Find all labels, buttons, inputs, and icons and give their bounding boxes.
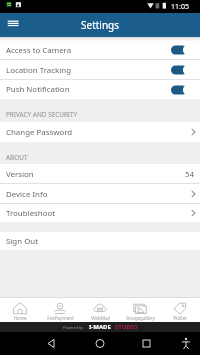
staticText: Version [6,169,34,180]
staticText: Change Password [6,127,73,138]
button[interactable]: System navigation [0,332,200,355]
staticText: 11:05 [171,2,189,12]
staticText: Sign Out [6,236,39,247]
staticText: PRIVACY AND SECURITY [6,110,78,119]
staticText: Wallet [173,315,187,321]
button[interactable]: Sign Out [0,232,200,250]
button[interactable]: Imagegallery [120,298,160,322]
staticText: 54 [185,169,195,180]
button[interactable]: Wallet [160,298,200,322]
staticText: Home [13,315,27,321]
button[interactable]: Toggle [171,43,188,57]
button[interactable]: Device Info [0,184,200,204]
staticText: Imagegallery [126,315,155,321]
staticText: Settings [81,18,120,32]
staticText: Push Notification [6,84,70,95]
button[interactable]: Change Password [0,122,200,142]
button[interactable]: Troubleshoot [0,204,200,222]
button[interactable]: Access to Camera [0,40,200,60]
staticText: Access to Camera [6,45,72,56]
button[interactable]: Toggle [171,63,188,77]
staticText: Troubleshoot [6,208,56,219]
button[interactable]: Version [0,164,200,184]
staticText: WebMail [91,315,110,321]
button[interactable]: Location Tracking [0,60,200,80]
staticText: Device Info [6,189,48,200]
button[interactable]: Open navigation menu [0,13,21,37]
staticText: Powered by [63,325,84,330]
button[interactable]: Powered by [0,322,200,332]
staticText: ABOUT [6,153,28,162]
staticText: FeePayment [47,315,74,321]
button[interactable]: Home [0,298,40,322]
button[interactable]: Push Notification [0,80,200,99]
staticText: STUDIO [115,323,138,331]
button[interactable]: FeePayment [40,298,80,322]
staticText: I-MADE [89,323,111,331]
button[interactable]: Toggle [171,83,188,97]
button[interactable]: WebMail [80,298,120,322]
staticText: Location Tracking [6,65,71,76]
